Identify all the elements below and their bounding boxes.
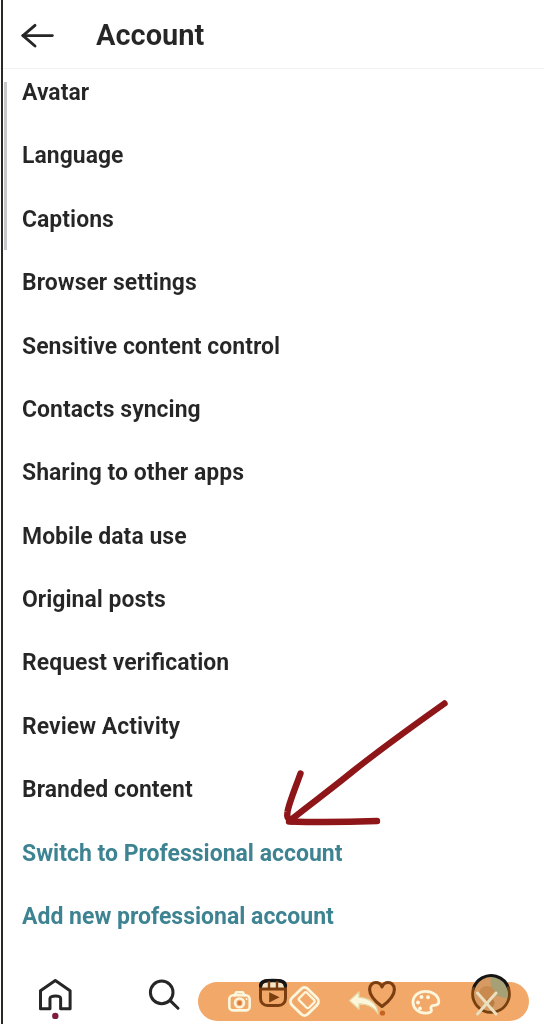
staticText: Review Activity xyxy=(22,713,181,740)
button[interactable]: Back xyxy=(4,6,64,66)
button[interactable]: Original posts xyxy=(0,568,544,631)
button[interactable]: Contacts syncing xyxy=(0,378,544,441)
button[interactable]: Review Activity xyxy=(0,695,544,758)
button[interactable]: Search xyxy=(144,976,184,1016)
button[interactable]: Branded content xyxy=(0,758,544,821)
staticText: Avatar xyxy=(22,79,90,106)
staticText: Contacts syncing xyxy=(22,396,201,423)
button[interactable]: Sharing to other apps xyxy=(0,441,544,504)
button[interactable]: Create xyxy=(198,982,529,1021)
button[interactable]: Avatar xyxy=(0,61,544,124)
button[interactable]: Home xyxy=(38,977,73,1017)
staticText: Add new professional account xyxy=(22,903,334,930)
staticText: Request verification xyxy=(22,649,230,676)
staticText: Mobile data use xyxy=(22,523,187,550)
button[interactable]: Profile xyxy=(471,974,511,1014)
staticText: Browser settings xyxy=(22,269,197,296)
staticText: Switch to Professional account xyxy=(22,840,343,867)
button[interactable]: Language xyxy=(0,124,544,187)
staticText: Captions xyxy=(22,206,114,233)
button[interactable]: Sensitive content control xyxy=(0,315,544,378)
button[interactable]: Browser settings xyxy=(0,251,544,314)
button[interactable]: Add new professional account xyxy=(0,885,544,948)
staticText: Branded content xyxy=(22,776,193,803)
button[interactable]: Captions xyxy=(0,188,544,251)
staticText: Sensitive content control xyxy=(22,333,281,360)
staticText: Language xyxy=(22,142,124,169)
staticText: Sharing to other apps xyxy=(22,459,244,486)
staticText: Original posts xyxy=(22,586,166,613)
button[interactable]: Switch to Professional account xyxy=(0,822,544,885)
staticText: Account xyxy=(96,18,205,52)
button[interactable]: Mobile data use xyxy=(0,505,544,568)
button[interactable]: Request verification xyxy=(0,631,544,694)
